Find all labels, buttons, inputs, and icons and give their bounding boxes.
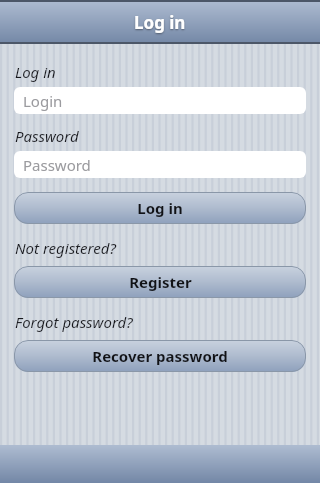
staticText: Log in [134,11,186,34]
button[interactable]: Login [14,87,306,114]
staticText: Log in [137,198,183,218]
button[interactable]: Password [14,151,306,178]
staticText: Forgot password? [15,312,133,332]
staticText: Password [23,155,91,175]
staticText: Register [129,272,192,292]
staticText: Not registered? [15,238,116,258]
staticText: Password [15,126,79,146]
button[interactable]: Recover password [14,340,306,372]
button[interactable]: Log in [14,192,306,224]
staticText: Recover password [92,346,228,366]
staticText: Log in [15,62,56,82]
staticText: Login [23,91,63,111]
button[interactable]: Register [14,266,306,298]
